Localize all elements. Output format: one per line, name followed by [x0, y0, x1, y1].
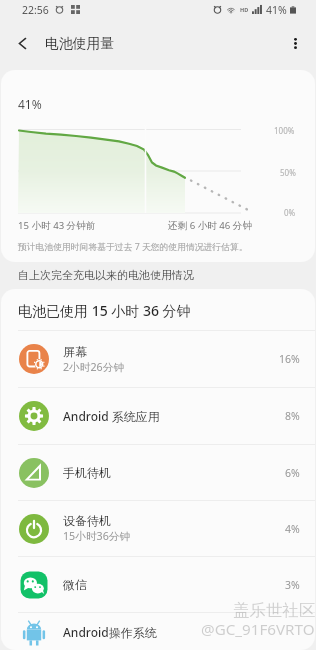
- staticText: 16%: [279, 352, 300, 366]
- button[interactable]: 设备待机: [1, 501, 315, 556]
- button[interactable]: Android操作系统: [1, 613, 315, 650]
- staticText: 100%: [274, 125, 295, 136]
- staticText: 22:56: [22, 3, 49, 17]
- button[interactable]: More options: [274, 22, 316, 64]
- button[interactable]: Android 系统应用: [1, 388, 315, 444]
- staticText: 设备待机: [63, 513, 111, 528]
- staticText: 2小时26分钟: [63, 360, 125, 375]
- staticText: @GC_91F6VRTO: [201, 619, 315, 640]
- staticText: Android 系统应用: [63, 408, 160, 424]
- staticText: 微信: [63, 577, 87, 592]
- staticText: 6%: [285, 466, 300, 480]
- staticText: 41%: [266, 3, 287, 17]
- button[interactable]: 微信: [1, 557, 315, 612]
- staticText: Android操作系统: [63, 624, 157, 640]
- staticText: 自上次完全充电以来的电池使用情况: [18, 268, 194, 282]
- staticText: 电池已使用 15 小时 36 分钟: [18, 301, 191, 320]
- staticText: 预计电池使用时间将基于过去 7 天您的使用情况进行估算。: [18, 241, 248, 253]
- staticText: 4%: [285, 522, 300, 536]
- button[interactable]: Back: [0, 22, 44, 64]
- staticText: 8%: [285, 409, 300, 423]
- staticText: 电池使用量: [45, 35, 114, 52]
- staticText: 0%: [284, 207, 296, 218]
- staticText: 15 小时 43 分钟前: [18, 219, 96, 232]
- staticText: 3%: [285, 578, 300, 592]
- staticText: 50%: [280, 167, 296, 178]
- staticText: 还剩 6 小时 46 分钟: [168, 219, 253, 232]
- staticText: 手机待机: [63, 465, 111, 480]
- staticText: HD: [240, 6, 249, 13]
- button[interactable]: 手机待机: [1, 445, 315, 500]
- staticText: 41%: [18, 96, 42, 112]
- staticText: 盖乐世社区: [233, 600, 316, 621]
- staticText: 15小时36分钟: [63, 529, 131, 544]
- staticText: 屏幕: [63, 344, 87, 359]
- button[interactable]: 屏幕: [1, 331, 315, 387]
